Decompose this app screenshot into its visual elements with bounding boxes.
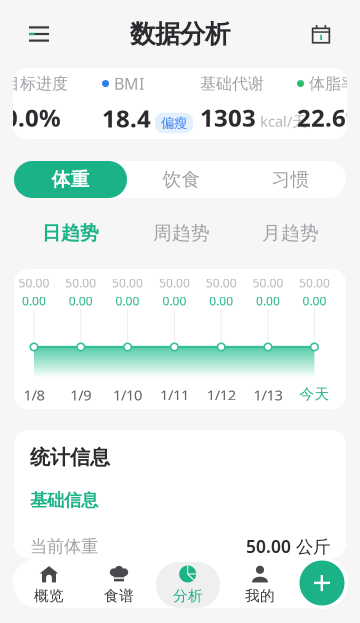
button[interactable]: 食谱 — [87, 562, 151, 608]
staticText: 1303 — [200, 101, 256, 133]
staticText: 数据分析 — [130, 18, 230, 49]
staticText: 食谱 — [104, 587, 134, 605]
button[interactable]: Add entry — [296, 557, 348, 609]
staticText: 体重 — [51, 168, 89, 191]
staticText: 0.00 — [302, 293, 326, 309]
staticText: 今天 — [299, 385, 329, 403]
staticText: 基础代谢 — [200, 74, 264, 93]
button[interactable]: 饮食 — [127, 161, 236, 198]
staticText: 偏瘦 — [161, 115, 187, 131]
staticText: 50.00 — [252, 275, 283, 291]
staticText: 50.00 — [18, 275, 49, 291]
button[interactable]: 概览 — [17, 562, 81, 608]
button[interactable]: 周趋势 — [127, 218, 236, 248]
staticText: 1/10 — [113, 385, 142, 404]
staticText: 50.00 — [206, 275, 237, 291]
staticText: 分析 — [173, 587, 203, 605]
staticText: 0.00 — [22, 293, 46, 309]
staticText: 0.0% — [4, 101, 61, 133]
staticText: 18.4 — [102, 102, 151, 134]
staticText: 1/13 — [253, 385, 282, 404]
staticText: 1/12 — [207, 385, 236, 404]
button[interactable]: Calendar — [300, 13, 342, 55]
staticText: 50.00 — [299, 275, 330, 291]
staticText: 统计信息 — [30, 445, 110, 470]
staticText: 习惯 — [271, 168, 309, 191]
staticText: 1/11 — [160, 385, 189, 404]
staticText: 0.00 — [116, 293, 140, 309]
staticText: 50.00 — [112, 275, 143, 291]
staticText: 50.00 公斤 — [246, 535, 330, 558]
staticText: 50.00 — [65, 275, 96, 291]
staticText: 1/8 — [23, 385, 44, 404]
staticText: 我的 — [245, 587, 275, 605]
staticText: 当前体重 — [30, 536, 98, 557]
staticText: 0.00 — [162, 293, 186, 309]
staticText: 0.00 — [256, 293, 280, 309]
staticText: 体脂率 — [309, 74, 357, 93]
staticText: 概览 — [34, 587, 64, 605]
staticText: BMI — [114, 73, 144, 94]
button[interactable]: 我的 — [228, 562, 292, 608]
staticText: 0.00 — [69, 293, 93, 309]
button[interactable]: 分析 — [156, 562, 220, 608]
staticText: 月趋势 — [262, 221, 319, 244]
staticText: 周趋势 — [153, 221, 210, 244]
staticText: 22.6% — [297, 101, 360, 133]
staticText: 基础信息 — [30, 490, 98, 511]
staticText: 50.00 — [159, 275, 190, 291]
button[interactable]: 日趋势 — [14, 218, 127, 248]
button[interactable]: Menu — [18, 13, 60, 55]
button[interactable]: 体重 — [14, 161, 127, 198]
button[interactable]: 习惯 — [236, 161, 345, 198]
staticText: kcal/天 — [260, 111, 307, 131]
staticText: 日趋势 — [42, 221, 99, 244]
staticText: 目标进度 — [4, 74, 68, 93]
staticText: 0.00 — [209, 293, 233, 309]
staticText: 饮食 — [162, 168, 200, 191]
staticText: 1/9 — [70, 385, 91, 404]
button[interactable]: 月趋势 — [236, 218, 345, 248]
